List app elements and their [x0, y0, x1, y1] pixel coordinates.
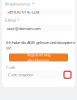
button[interactable]: Registrierung abschliessen	[9, 53, 68, 61]
staticText: E-Mail *	[5, 17, 19, 23]
button[interactable]: user@domain.com	[5, 25, 72, 32]
staticText: Ich habe die AGB gelesen und akzeptiere …	[6, 40, 75, 50]
staticText: Code	[6, 64, 15, 70]
button[interactable]: +49 (DE) 0176 1234	[5, 8, 72, 15]
staticText: user@domain.com	[7, 26, 41, 31]
staticText: Code eingeben	[8, 72, 33, 77]
button[interactable]: Stop	[64, 71, 71, 78]
staticText: Registrierung abschliessen	[27, 52, 50, 63]
staticText: +49 (DE) 0176 1234	[7, 9, 39, 15]
staticText: Mobilnummer *	[5, 1, 34, 6]
